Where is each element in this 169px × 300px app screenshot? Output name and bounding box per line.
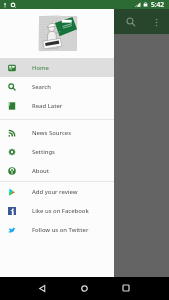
button[interactable]: Add your review [0, 182, 114, 201]
staticText: 5:42 [151, 0, 165, 9]
staticText: Home [32, 64, 49, 72]
button[interactable]: News Sources [0, 123, 114, 142]
button[interactable]: Follow us on Twitter [0, 220, 114, 239]
button[interactable]: More options [145, 11, 167, 33]
button[interactable]: Home [0, 58, 114, 77]
button[interactable]: Search [120, 11, 142, 33]
staticText: Like us on Facebook [32, 207, 89, 215]
staticText: About [32, 167, 50, 175]
button[interactable]: Read Later [0, 96, 114, 115]
staticText: Settings [32, 148, 55, 156]
staticText: Add your review [32, 188, 78, 196]
button[interactable]: Settings [0, 142, 114, 161]
button[interactable]: Search [0, 77, 114, 96]
staticText: Read Later [32, 102, 63, 110]
button[interactable]: Recent apps [116, 278, 136, 298]
button[interactable]: Like us on Facebook [0, 201, 114, 220]
button[interactable]: Back [32, 278, 52, 298]
staticText: News Sources [32, 129, 72, 137]
button[interactable]: About [0, 161, 114, 180]
button[interactable]: Home [74, 278, 94, 298]
staticText: Follow us on Twitter [32, 226, 89, 234]
staticText: Search [32, 83, 51, 91]
